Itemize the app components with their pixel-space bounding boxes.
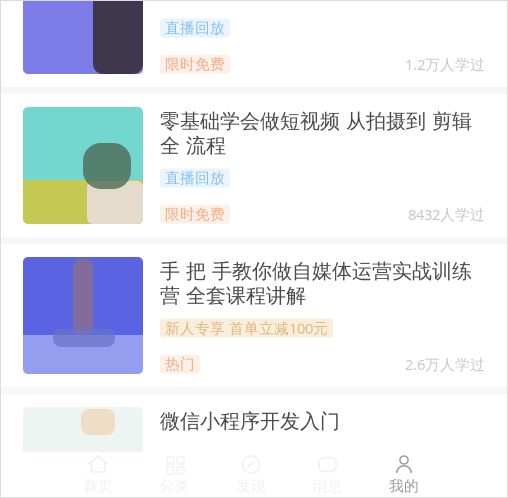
staticText: 微信小程序开发入门 [160,409,340,434]
button[interactable]: 零基础学会做短视频 从拍摄到 剪辑全 流程 [0,94,508,244]
staticText: 新人专享 首单立减100元 [165,318,328,338]
button[interactable]: 分类 [136,456,213,493]
staticText: 直播回放 [165,19,225,37]
button[interactable]: 摄影后期调色全解析 零基础 入门 [0,0,508,94]
staticText: 分类 [159,477,189,495]
staticText: 限时免费 [165,55,225,73]
button[interactable]: 发现 [213,456,289,493]
staticText: 1.2万人学过 [405,54,485,74]
button[interactable]: 消息 [289,456,366,493]
button[interactable]: 微信小程序开发入门 [0,394,508,498]
button[interactable]: 首页 [60,456,136,493]
staticText: 2.6万人学过 [405,354,485,374]
staticText: 首页 [83,477,113,495]
staticText: 热门 [165,355,195,373]
staticText: 我的 [389,477,419,495]
staticText: 手 把 手教你做自媒体运营实战训练营 全套课程讲解 [160,259,472,308]
staticText: 8432人学过 [408,204,485,224]
staticText: 零基础学会做短视频 从拍摄到 剪辑全 流程 [160,109,472,158]
staticText: 限时免费 [165,205,225,223]
button[interactable]: 手 把 手教你做自媒体运营实战训练营 全套课程讲解 [0,244,508,394]
staticText: 直播回放 [165,169,225,187]
staticText: 消息 [312,477,342,495]
staticText: 发现 [236,477,266,495]
button[interactable]: 我的 [366,456,442,493]
